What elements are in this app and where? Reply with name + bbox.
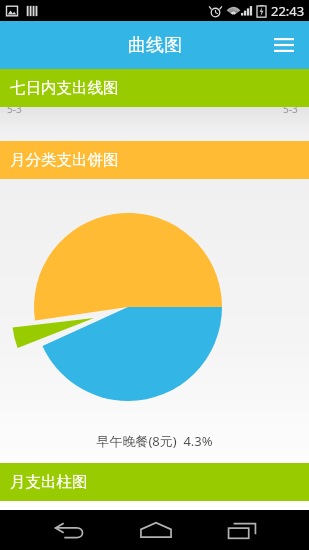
staticText: 七日内支出线图 xyxy=(10,78,119,98)
staticText: 5-3 xyxy=(283,107,298,116)
staticText: 早午晚餐(8元) 4.3% xyxy=(96,432,213,450)
staticText: 月支出柱图 xyxy=(10,472,88,492)
button[interactable]: Home xyxy=(125,510,187,550)
button[interactable]: 月支出柱图 xyxy=(0,463,309,501)
button[interactable]: Menu xyxy=(269,30,299,60)
staticText: 22:43 xyxy=(271,2,305,20)
staticText: 月分类支出饼图 xyxy=(10,150,119,170)
staticText: 曲线图 xyxy=(128,34,182,57)
button[interactable]: Back xyxy=(39,510,101,550)
button[interactable]: 七日内支出线图 xyxy=(0,69,309,107)
button[interactable]: 月分类支出饼图 xyxy=(0,141,309,179)
staticText: 5-3 xyxy=(7,107,22,116)
button[interactable]: Recent apps xyxy=(211,510,273,550)
